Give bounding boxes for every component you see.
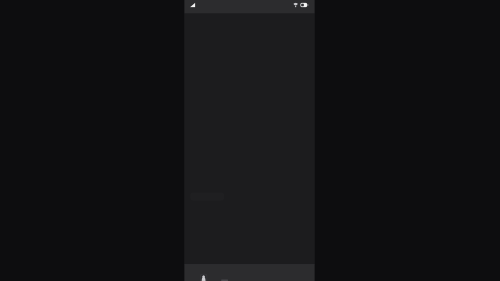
button[interactable]: More xyxy=(217,264,232,281)
button[interactable]: Account xyxy=(196,264,211,281)
